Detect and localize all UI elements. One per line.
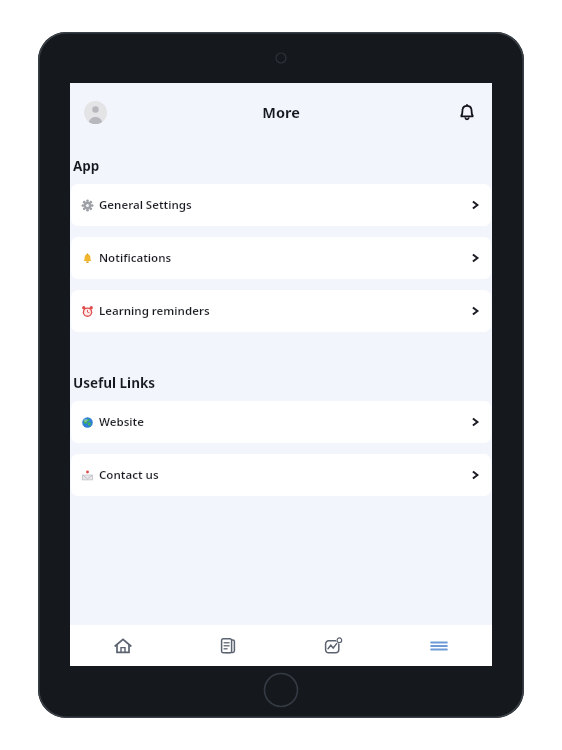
button[interactable]: Menu	[386, 625, 492, 666]
button[interactable]: Profile	[78, 95, 112, 129]
staticText: App	[73, 157, 100, 175]
staticText: Learning reminders	[99, 303, 210, 319]
button[interactable]: Home	[70, 625, 175, 666]
button[interactable]: Notifications	[71, 237, 491, 279]
staticText: Contact us	[99, 467, 159, 483]
button[interactable]: Learning reminders	[71, 290, 491, 332]
staticText: More	[262, 102, 300, 122]
button[interactable]: Progress	[280, 625, 386, 666]
button[interactable]: General Settings	[71, 184, 491, 226]
staticText: Notifications	[99, 250, 172, 266]
button[interactable]: Website	[71, 401, 491, 443]
button[interactable]: Contact us	[71, 454, 491, 496]
staticText: Website	[99, 414, 144, 430]
button[interactable]: Notifications	[450, 95, 484, 129]
staticText: General Settings	[99, 197, 192, 213]
staticText: Useful Links	[73, 374, 156, 392]
button[interactable]: Documents	[175, 625, 280, 666]
